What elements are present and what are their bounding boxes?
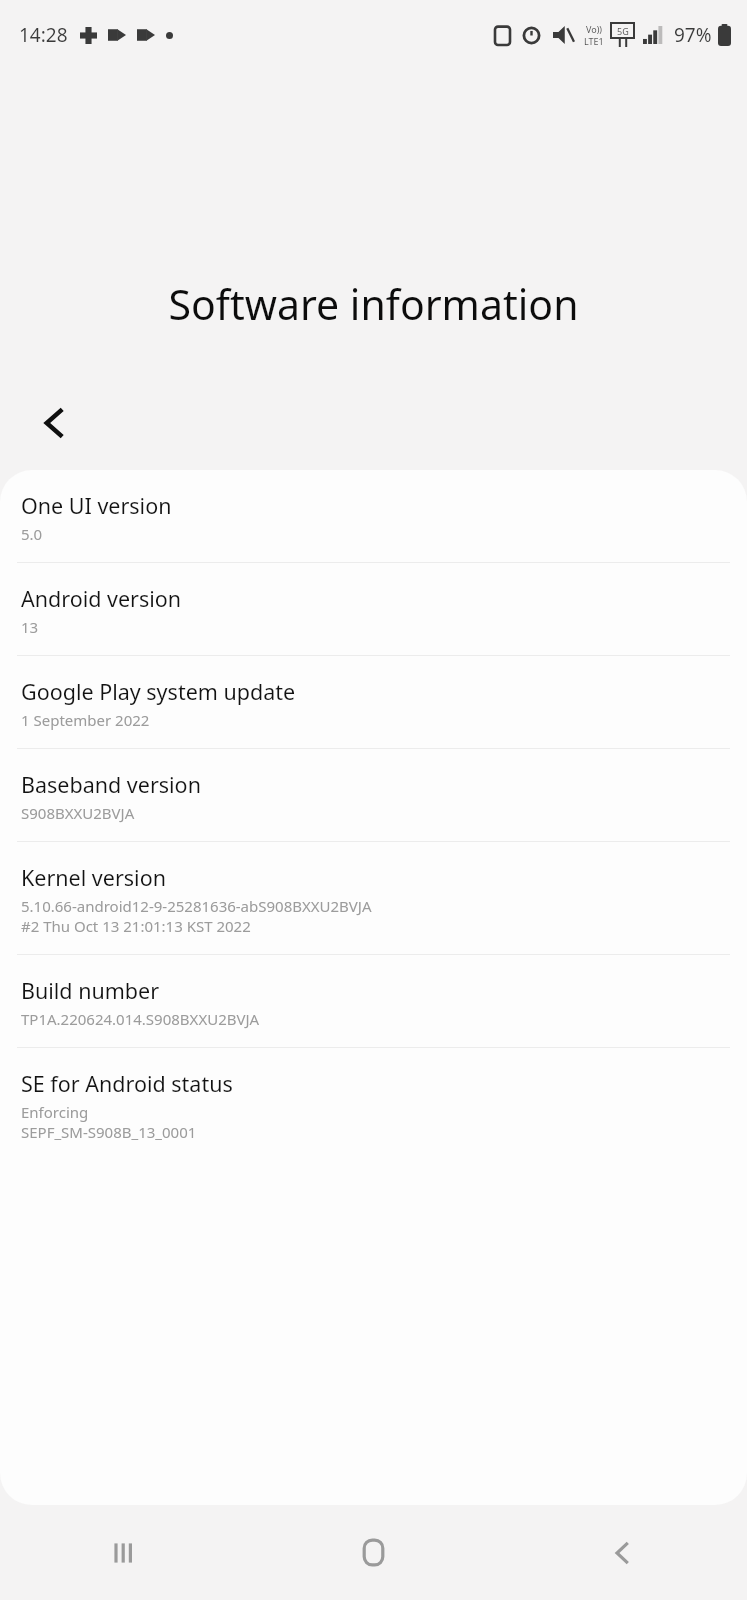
staticText: Kernel version xyxy=(21,863,166,892)
staticText: 1 September 2022 xyxy=(21,710,150,730)
staticText: 13 xyxy=(21,617,39,637)
button[interactable]: Google Play system update xyxy=(0,656,747,749)
button[interactable]: Build number xyxy=(0,955,747,1048)
staticText: Software information xyxy=(0,276,747,332)
button[interactable]: Home xyxy=(249,1505,498,1600)
staticText: 5.10.66-android12-9-25281636-abS908BXXU2… xyxy=(21,896,372,916)
staticText: S908BXXU2BVJA xyxy=(21,803,135,823)
staticText: 14:28 xyxy=(19,22,68,48)
staticText: Baseband version xyxy=(21,770,201,799)
button[interactable]: Navigate up xyxy=(16,384,94,462)
staticText: SEPF_SM-S908B_13_0001 xyxy=(21,1122,197,1142)
staticText: #2 Thu Oct 13 21:01:13 KST 2022 xyxy=(21,916,251,936)
staticText: SE for Android status xyxy=(21,1069,233,1098)
staticText: One UI version xyxy=(21,491,172,520)
button[interactable]: Kernel version xyxy=(0,842,747,955)
staticText: Enforcing xyxy=(21,1102,89,1122)
staticText: Google Play system update xyxy=(21,677,296,706)
button[interactable]: Recents xyxy=(0,1505,249,1600)
staticText: LTE1 xyxy=(584,35,604,47)
staticText: Build number xyxy=(21,976,160,1005)
button[interactable]: Baseband version xyxy=(0,749,747,842)
staticText: 5.0 xyxy=(21,524,43,544)
button[interactable]: Android version xyxy=(0,563,747,656)
staticText: 97% xyxy=(674,22,712,48)
button[interactable]: One UI version xyxy=(0,470,747,563)
staticText: Vo)) xyxy=(586,23,603,35)
staticText: Android version xyxy=(21,584,182,613)
staticText: TP1A.220624.014.S908BXXU2BVJA xyxy=(21,1009,260,1029)
staticText: 5G xyxy=(617,25,629,37)
button[interactable]: SE for Android status xyxy=(0,1048,747,1160)
button[interactable]: Back xyxy=(498,1505,747,1600)
